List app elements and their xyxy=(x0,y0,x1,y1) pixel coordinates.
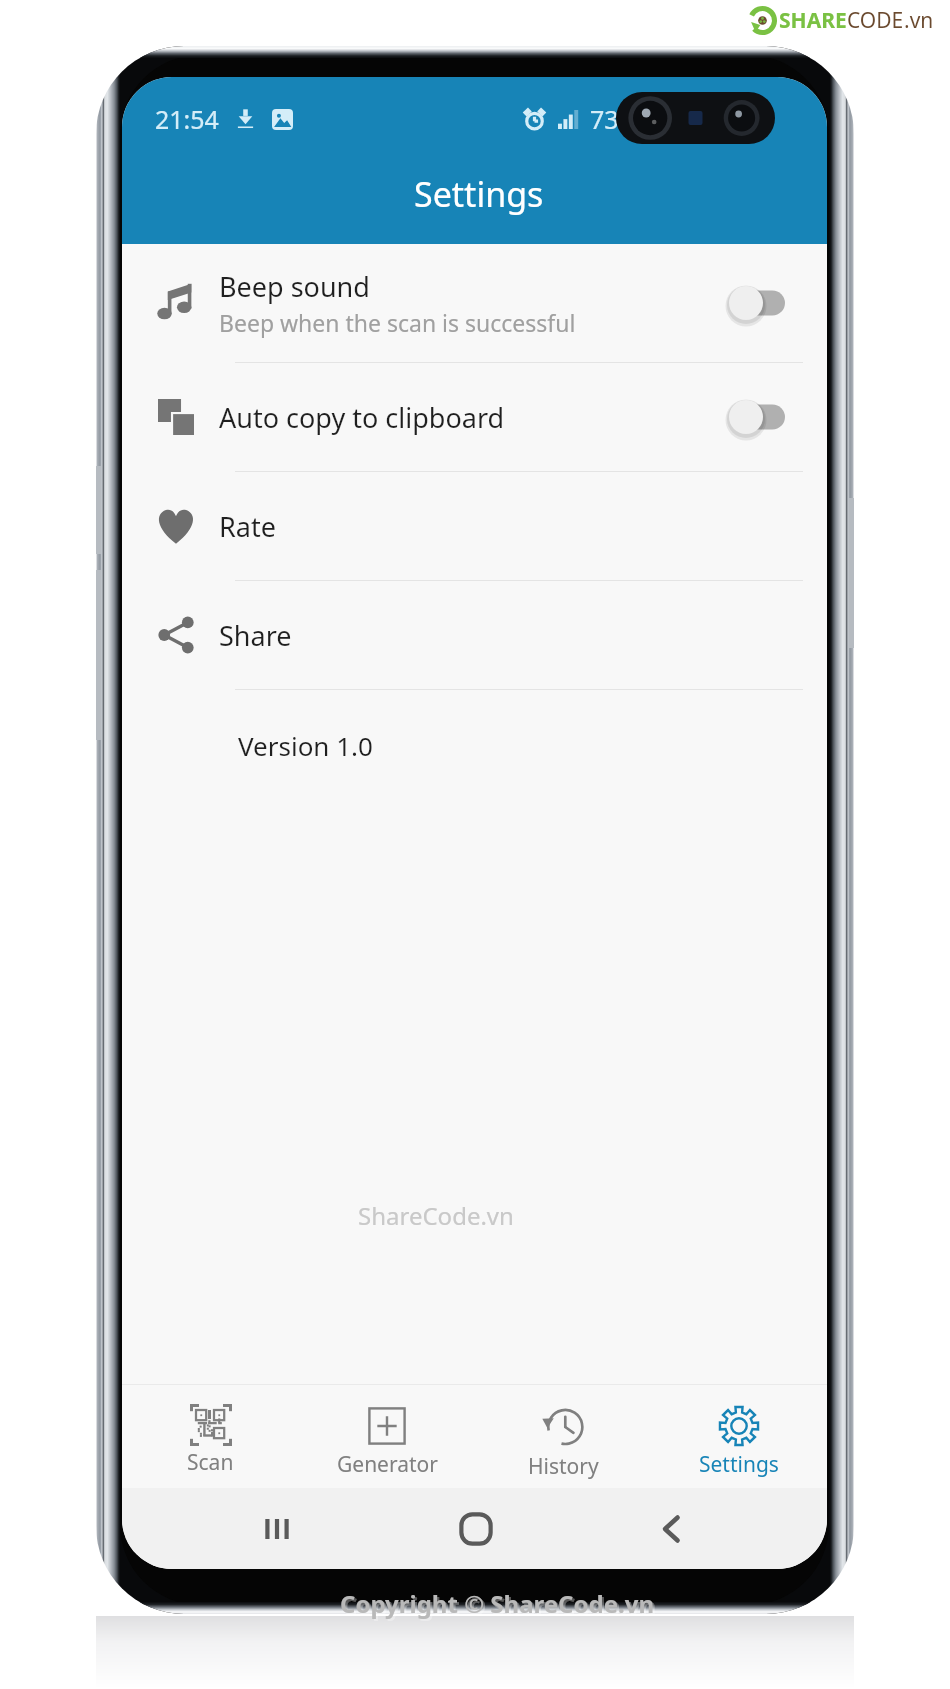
staticText: 21:54 xyxy=(155,102,219,136)
staticText: Settings xyxy=(414,171,544,217)
button[interactable]: Recent apps xyxy=(241,1488,313,1569)
staticText: Auto copy to clipboard xyxy=(219,399,505,436)
staticText: Version 1.0 xyxy=(238,728,373,763)
staticText: Settings xyxy=(699,1450,779,1479)
staticText: Copyright © ShareCode.vn xyxy=(342,1589,657,1622)
staticText: Copyright © ShareCode.vn xyxy=(340,1587,655,1620)
staticText: Generator xyxy=(337,1450,438,1479)
staticText: Share xyxy=(219,617,292,654)
button[interactable]: Home xyxy=(440,1488,512,1569)
button[interactable]: Back xyxy=(635,1488,707,1569)
staticText: 73% xyxy=(590,102,640,136)
staticText: Beep sound xyxy=(219,268,370,305)
button[interactable]: Generator xyxy=(299,1385,475,1488)
staticText: Scan xyxy=(187,1448,234,1477)
staticText: History xyxy=(528,1452,599,1481)
button[interactable]: Beep sound xyxy=(122,244,827,363)
button[interactable]: Auto copy to clipboard xyxy=(122,363,827,472)
button[interactable]: Rate xyxy=(122,472,827,581)
button[interactable]: History xyxy=(475,1385,651,1488)
staticText: CODE xyxy=(847,6,904,35)
button[interactable]: Share xyxy=(122,581,827,690)
staticText: SHARE xyxy=(779,6,847,35)
staticText: Rate xyxy=(219,508,276,545)
button[interactable]: Scan xyxy=(122,1385,299,1488)
staticText: ShareCode.vn xyxy=(358,1199,514,1232)
staticText: .vn xyxy=(904,6,934,35)
button[interactable]: Settings xyxy=(651,1385,827,1488)
staticText: Beep when the scan is successful xyxy=(219,307,576,338)
